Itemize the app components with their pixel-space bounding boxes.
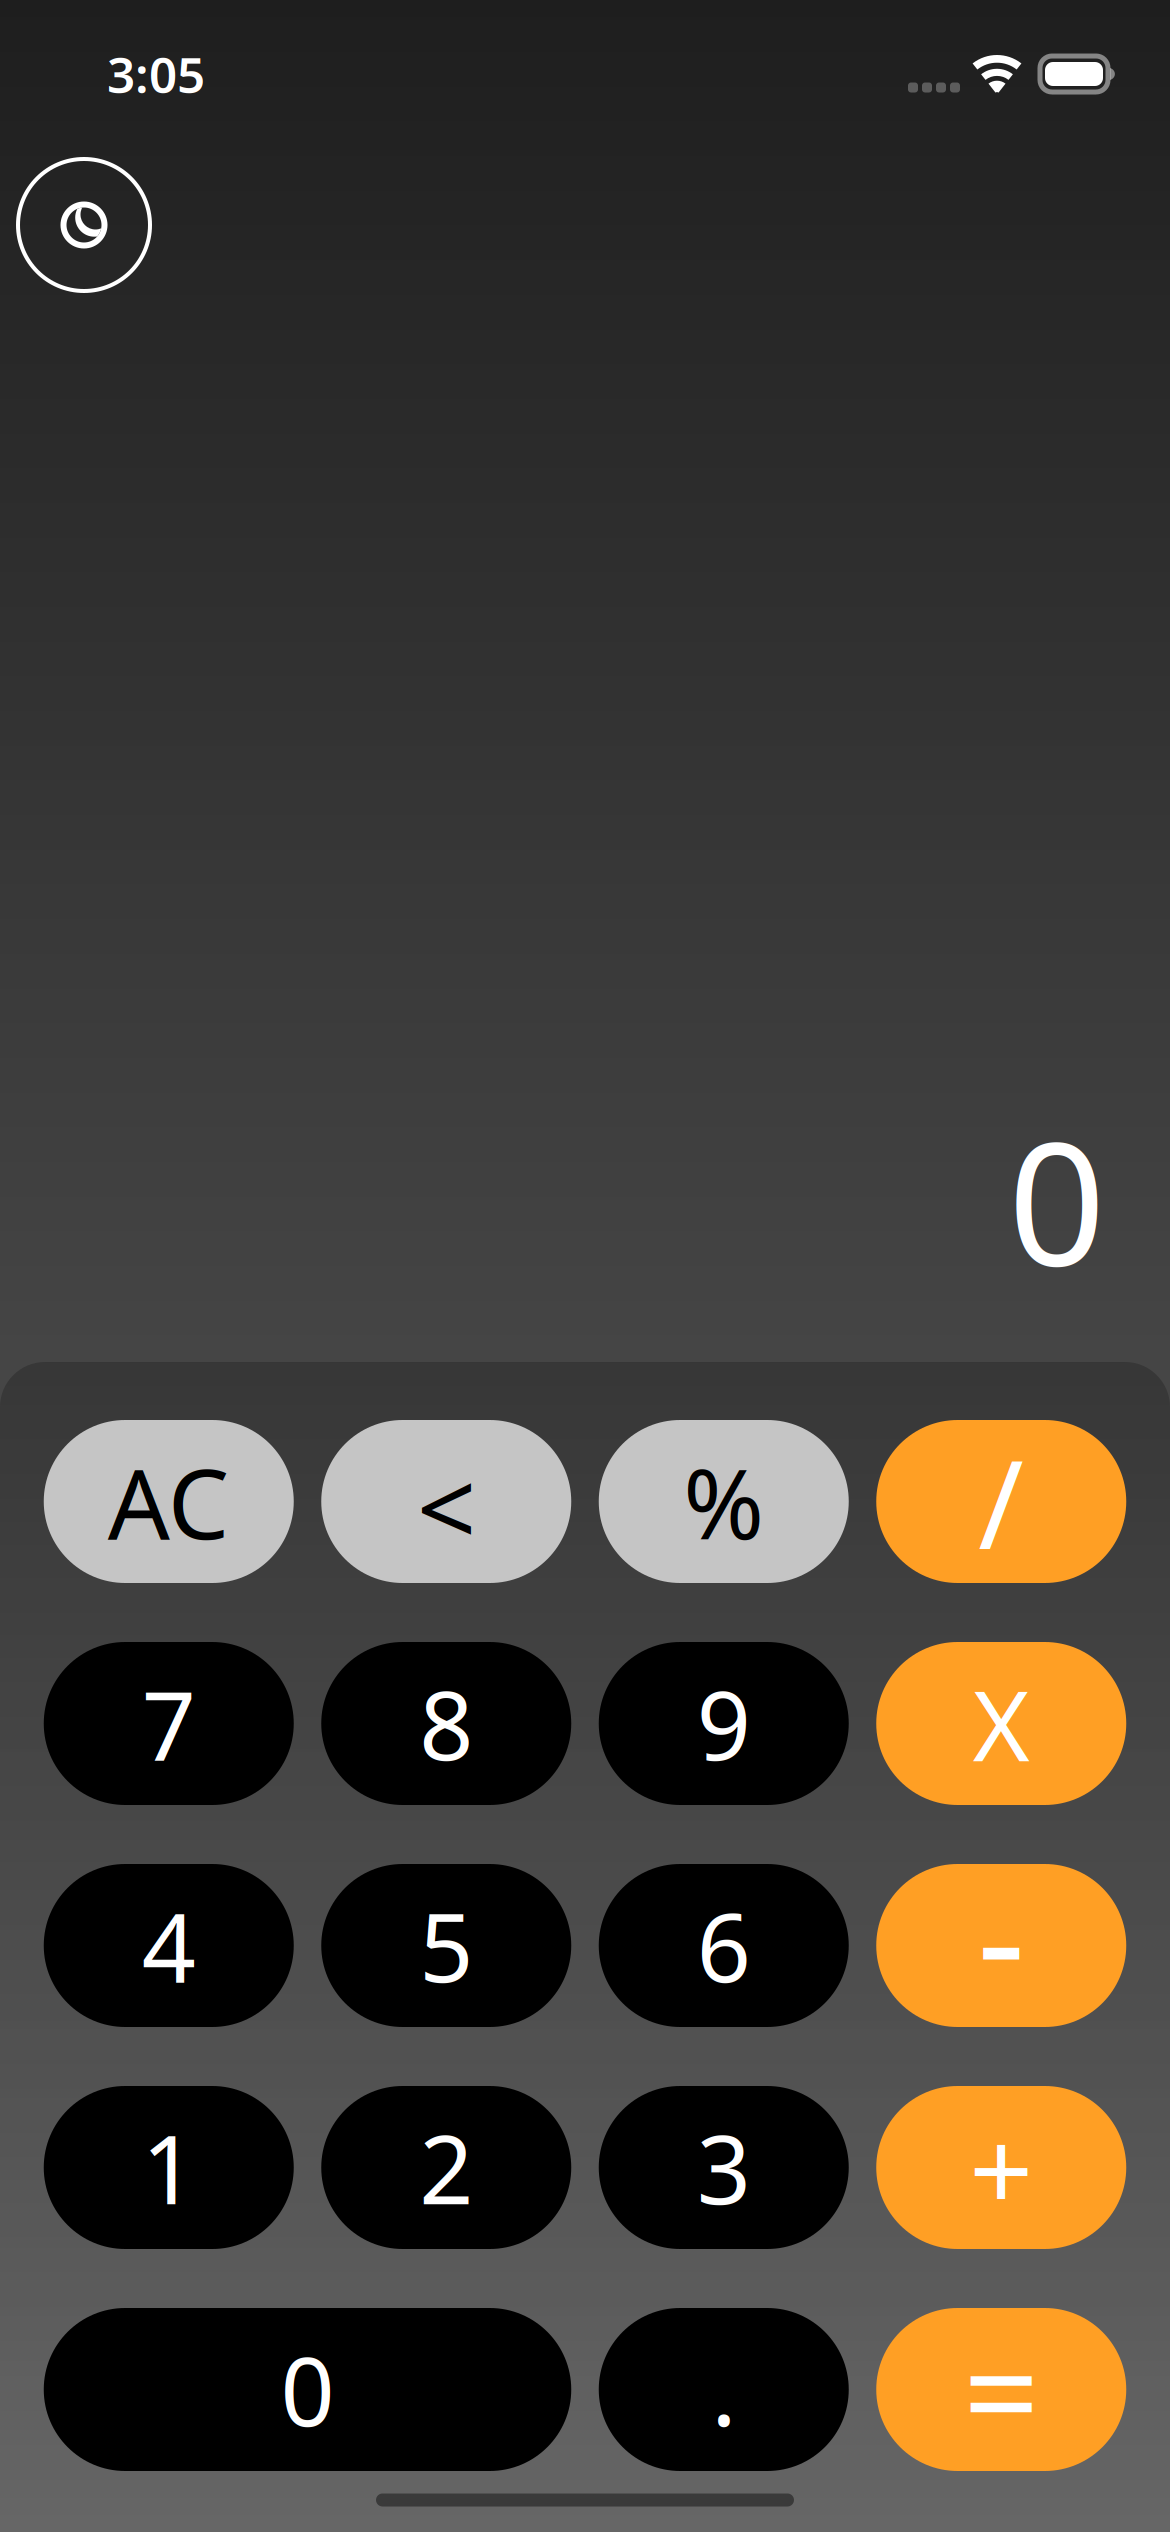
button[interactable]: 9 — [599, 1642, 849, 1805]
button[interactable]: 8 — [321, 1642, 571, 1805]
button[interactable]: % — [599, 1420, 849, 1583]
button[interactable]: . — [599, 2308, 849, 2471]
staticText: 6 — [697, 1883, 751, 2008]
button[interactable]: 7 — [44, 1642, 294, 1805]
button[interactable]: 0 — [44, 2308, 571, 2471]
staticText: 7 — [142, 1661, 196, 1786]
button[interactable]: 2 — [321, 2086, 571, 2249]
staticText: X — [973, 1659, 1030, 1788]
staticText: = — [963, 2301, 1039, 2478]
staticText: / — [978, 1420, 1024, 1583]
staticText: < — [417, 1437, 476, 1575]
button[interactable]: X — [876, 1642, 1126, 1805]
button[interactable]: + — [876, 2086, 1126, 2249]
button[interactable]: 5 — [321, 1864, 571, 2027]
button[interactable]: / — [876, 1420, 1126, 1583]
staticText: . — [711, 2327, 736, 2452]
staticText: 3:05 — [107, 41, 205, 107]
button[interactable]: = — [876, 2308, 1126, 2471]
staticText: 2 — [419, 2105, 473, 2230]
staticText: - — [977, 1836, 1025, 2035]
button[interactable]: - — [876, 1864, 1126, 2027]
staticText: 0 — [1008, 1086, 1106, 1312]
staticText: AC — [108, 1437, 230, 1566]
button[interactable]: 3 — [599, 2086, 849, 2249]
staticText: 0 — [280, 2327, 334, 2452]
button[interactable]: Toggle dark mode — [16, 157, 152, 293]
staticText: 9 — [697, 1661, 751, 1786]
staticText: 5 — [419, 1883, 473, 2008]
staticText: 3 — [697, 2105, 751, 2230]
staticText: + — [969, 2093, 1033, 2242]
staticText: 8 — [419, 1661, 473, 1786]
button[interactable]: AC — [44, 1420, 294, 1583]
button[interactable]: 4 — [44, 1864, 294, 2027]
button[interactable]: < — [321, 1420, 571, 1583]
button[interactable]: 1 — [44, 2086, 294, 2249]
staticText: % — [683, 1437, 764, 1566]
staticText: 4 — [142, 1883, 196, 2008]
button[interactable]: 6 — [599, 1864, 849, 2027]
staticText: 1 — [142, 2105, 196, 2230]
